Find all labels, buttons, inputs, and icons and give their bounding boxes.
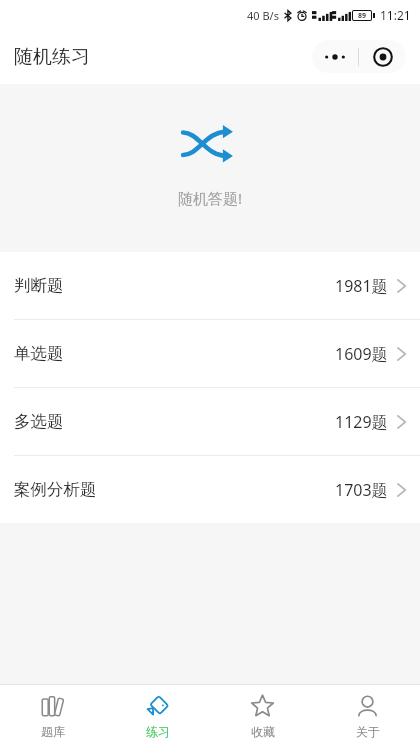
staticText: 40 B/s: [247, 8, 279, 23]
button[interactable]: 收藏: [210, 685, 315, 747]
staticText: 11:21: [380, 7, 411, 23]
staticText: 练习: [146, 724, 170, 739]
staticText: 1703题: [335, 479, 388, 501]
staticText: 多选题: [14, 411, 64, 432]
button[interactable]: 案例分析题: [0, 456, 420, 523]
button[interactable]: 单选题: [0, 320, 420, 387]
staticText: 关于: [356, 724, 380, 739]
staticText: 收藏: [251, 724, 275, 739]
button[interactable]: More options: [312, 40, 358, 73]
staticText: 89: [358, 11, 367, 20]
button[interactable]: 题库: [0, 685, 105, 747]
button[interactable]: 判断题: [0, 252, 420, 319]
staticText: 随机答题!: [178, 188, 243, 208]
staticText: 题库: [41, 724, 65, 739]
staticText: 单选题: [14, 343, 64, 364]
staticText: 案例分析题: [14, 479, 97, 500]
staticText: 1129题: [335, 411, 388, 433]
button[interactable]: 练习: [105, 685, 210, 747]
button[interactable]: 多选题: [0, 388, 420, 455]
staticText: 随机练习: [14, 45, 90, 69]
staticText: 判断题: [14, 275, 64, 296]
other: Shuffle: [182, 122, 238, 166]
button[interactable]: 关于: [315, 685, 420, 747]
button[interactable]: Close: [359, 40, 406, 73]
staticText: 1609题: [335, 343, 388, 365]
staticText: 1981题: [335, 275, 388, 297]
